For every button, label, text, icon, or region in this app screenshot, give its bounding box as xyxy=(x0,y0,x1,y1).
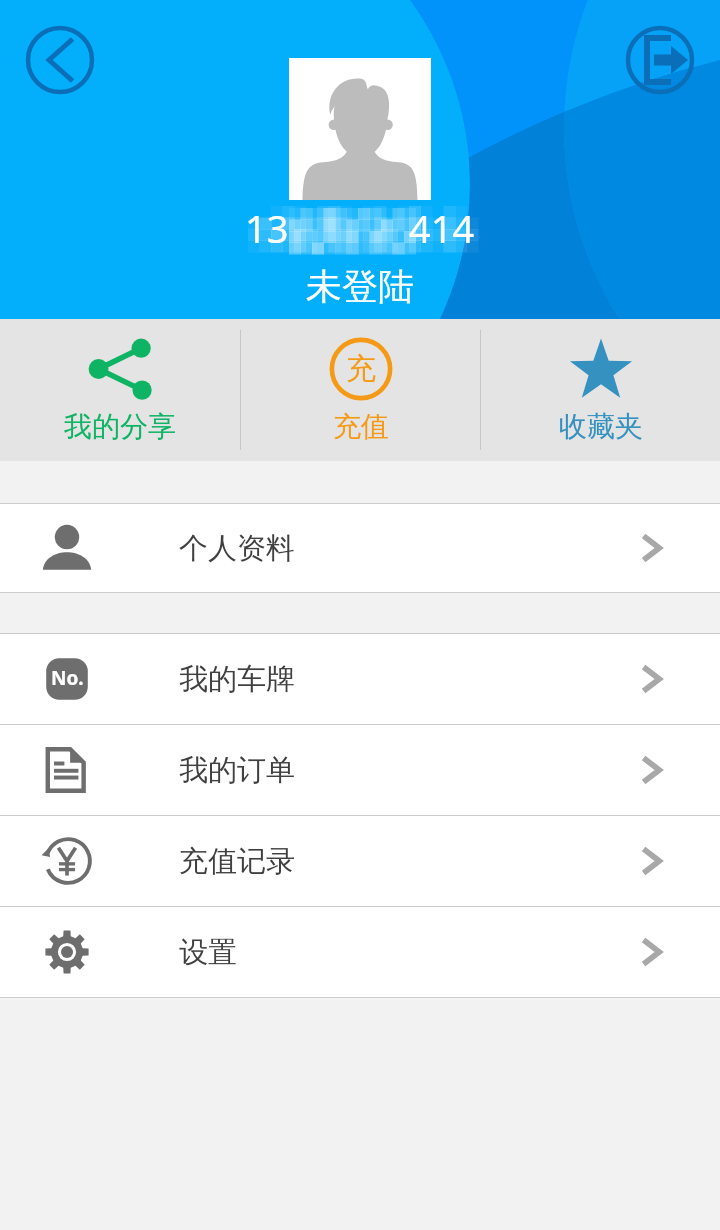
staticText: 设置 xyxy=(179,934,237,971)
button[interactable]: 个人资料 xyxy=(0,504,720,592)
staticText: 414 xyxy=(409,202,475,254)
staticText: No. xyxy=(51,665,84,691)
staticText: 未登陆 xyxy=(306,264,414,309)
button[interactable]: Back xyxy=(21,21,99,99)
staticText: 充值 xyxy=(333,409,389,444)
staticText: 13 xyxy=(245,202,289,254)
button[interactable]: No. xyxy=(0,634,720,724)
button[interactable]: 我的分享 xyxy=(0,319,240,461)
staticText: 我的分享 xyxy=(64,409,176,444)
staticText: 个人资料 xyxy=(179,530,295,567)
button[interactable]: 充 xyxy=(241,319,480,461)
button[interactable]: Log out xyxy=(621,21,699,99)
staticText: 充 xyxy=(346,350,376,388)
staticText: 我的订单 xyxy=(179,752,295,789)
button[interactable]: 设置 xyxy=(0,907,720,997)
button[interactable]: 我的订单 xyxy=(0,725,720,815)
button[interactable]: 充值记录 xyxy=(0,816,720,906)
staticText: 充值记录 xyxy=(179,843,295,880)
button[interactable]: 收藏夹 xyxy=(481,319,720,461)
staticText: 收藏夹 xyxy=(559,409,643,444)
staticText: 我的车牌 xyxy=(179,661,295,698)
